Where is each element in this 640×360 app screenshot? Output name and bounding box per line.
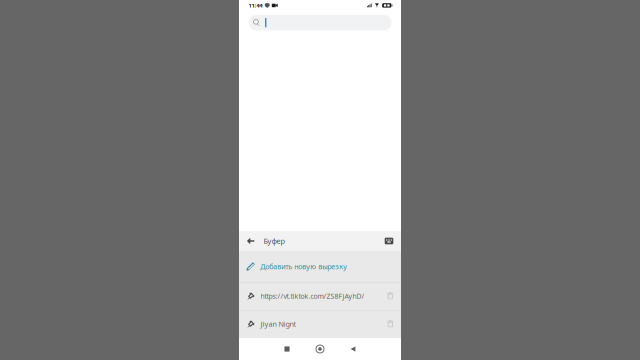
button[interactable]: Keyboard (380, 231, 398, 251)
button[interactable]: Home (303, 338, 336, 360)
button[interactable]: Recent apps (270, 338, 303, 360)
staticText: Буфер (264, 236, 285, 246)
button[interactable] (248, 15, 391, 30)
button[interactable]: Back (336, 338, 369, 360)
button[interactable]: Добавить новую вырезку (239, 251, 401, 282)
button[interactable]: Back (242, 231, 260, 251)
staticText: Добавить новую вырезку (260, 262, 347, 271)
staticText: 11:44 (248, 2, 262, 9)
staticText: Jiyan Nignt (261, 319, 297, 329)
button[interactable]: https://vt.tiktok.com/ZS8FjAyhD/ (239, 282, 401, 310)
button[interactable]: Jiyan Nignt (239, 310, 401, 338)
staticText: https://vt.tiktok.com/ZS8FjAyhD/ (261, 291, 365, 301)
